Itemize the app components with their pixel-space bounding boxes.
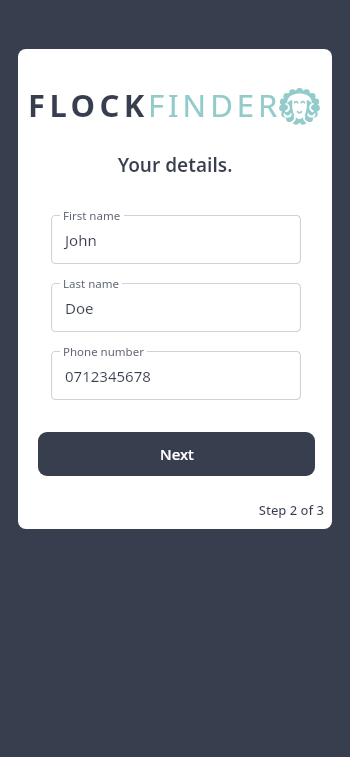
- button[interactable]: Next: [38, 432, 315, 476]
- staticText: First name: [63, 208, 121, 224]
- button[interactable]: John: [51, 215, 301, 264]
- button[interactable]: Doe: [51, 283, 301, 332]
- button[interactable]: 0712345678: [51, 351, 301, 400]
- staticText: Phone number: [63, 344, 144, 360]
- staticText: John: [65, 230, 97, 250]
- staticText: FLOCK: [28, 84, 149, 126]
- staticText: 0712345678: [65, 366, 151, 386]
- staticText: Doe: [65, 298, 94, 318]
- staticText: Last name: [63, 276, 119, 292]
- staticText: Step 2 of 3: [18, 501, 324, 519]
- staticText: FINDER: [148, 84, 282, 126]
- staticText: Your details.: [18, 152, 332, 178]
- staticText: Next: [160, 444, 194, 464]
